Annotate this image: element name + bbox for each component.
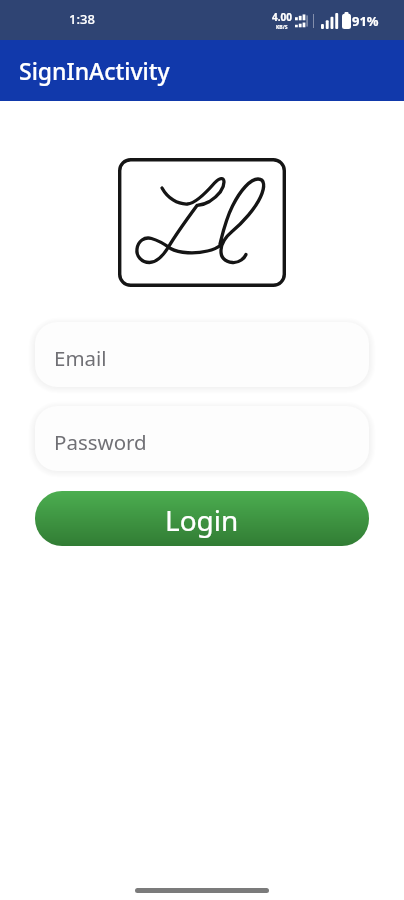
- button[interactable]: Login: [35, 491, 369, 546]
- staticText: Email: [54, 344, 107, 372]
- staticText: 1:38: [69, 10, 95, 28]
- staticText: SignInActivity: [19, 55, 170, 86]
- staticText: KB/S: [276, 24, 288, 31]
- button[interactable]: Password: [35, 406, 369, 471]
- button[interactable]: App logo: [118, 158, 286, 287]
- button[interactable]: Email: [35, 322, 369, 387]
- staticText: 4.00: [272, 10, 292, 24]
- staticText: 91%: [352, 12, 379, 30]
- staticText: Password: [54, 428, 147, 456]
- staticText: Login: [165, 501, 239, 539]
